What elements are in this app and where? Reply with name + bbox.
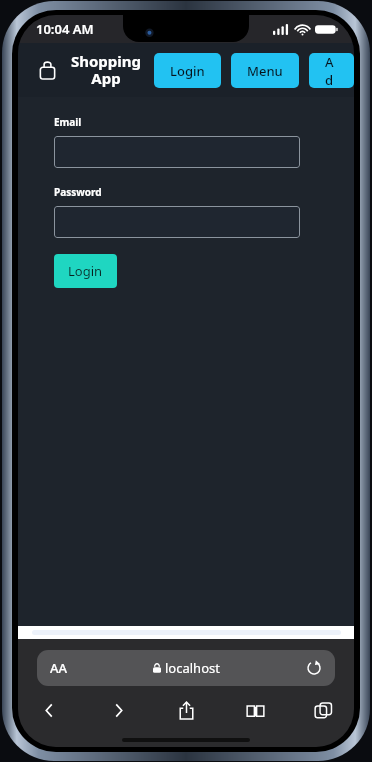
button[interactable] (54, 136, 300, 168)
button[interactable]: Share (169, 693, 203, 727)
button[interactable]: Shopping bag (30, 53, 64, 87)
button[interactable]: Login (54, 254, 117, 288)
button[interactable]: Bookmarks (238, 693, 272, 727)
staticText: Shopping App (68, 51, 144, 89)
button[interactable]: AA (37, 650, 335, 686)
button[interactable]: Login (154, 53, 221, 88)
staticText: AA (50, 659, 68, 677)
staticText: localhost (165, 659, 220, 677)
staticText: Login (170, 62, 205, 80)
button[interactable]: Forward (101, 693, 135, 727)
button[interactable]: Reload (304, 658, 324, 678)
button[interactable] (54, 206, 300, 238)
staticText: Login (68, 262, 103, 280)
staticText: Admin (325, 53, 338, 88)
staticText: Email (54, 115, 82, 129)
button[interactable]: Back (32, 693, 66, 727)
button[interactable]: Menu (231, 53, 299, 88)
button[interactable]: Tabs (306, 693, 340, 727)
staticText: Menu (247, 62, 283, 80)
button[interactable]: Admin (309, 53, 354, 88)
staticText: Password (54, 185, 102, 199)
staticText: 10:04 AM (36, 20, 94, 38)
